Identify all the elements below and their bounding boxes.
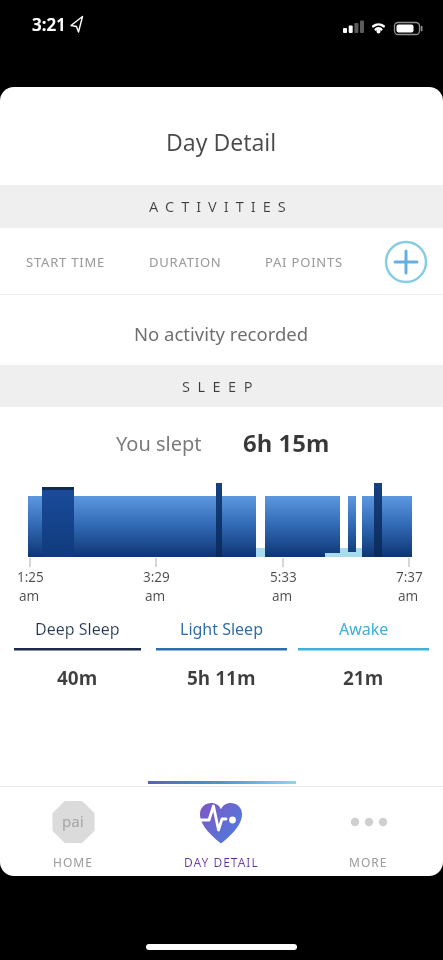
staticText: ACTIVITIES <box>149 196 293 216</box>
staticText: SLEEP <box>182 376 260 396</box>
staticText: 7:37 <box>396 568 423 586</box>
staticText: DURATION <box>149 253 222 271</box>
staticText: am <box>145 587 166 605</box>
staticText: 5:33 <box>270 568 297 586</box>
staticText: am <box>19 587 40 605</box>
staticText: Day Detail <box>166 126 277 157</box>
staticText: pai <box>62 811 84 831</box>
button[interactable] <box>178 795 264 875</box>
staticText: 40m <box>57 665 98 691</box>
staticText: Awake <box>339 618 389 640</box>
button[interactable]: Deep Sleep <box>14 609 141 649</box>
button[interactable]: Light Sleep <box>156 609 287 649</box>
staticText: am <box>398 587 419 605</box>
staticText: 3:21 <box>32 13 66 36</box>
staticText: 3:29 <box>143 568 170 586</box>
staticText: PAI POINTS <box>265 253 343 271</box>
staticText: am <box>272 587 293 605</box>
staticText: Deep Sleep <box>35 618 120 640</box>
staticText: 5h 11m <box>187 665 256 691</box>
staticText: 6h 15m <box>243 426 330 459</box>
button[interactable] <box>385 241 427 283</box>
staticText: START TIME <box>26 253 106 271</box>
staticText: No activity recorded <box>134 321 309 346</box>
button[interactable] <box>328 795 408 875</box>
staticText: HOME <box>53 854 93 870</box>
staticText: 21m <box>343 665 384 691</box>
staticText: You slept <box>116 430 202 457</box>
button[interactable] <box>33 795 113 875</box>
staticText: Light Sleep <box>180 618 263 640</box>
button[interactable]: Awake <box>298 609 429 649</box>
staticText: 1:25 <box>17 568 44 586</box>
staticText: MORE <box>349 854 388 870</box>
staticText: DAY DETAIL <box>184 854 259 870</box>
